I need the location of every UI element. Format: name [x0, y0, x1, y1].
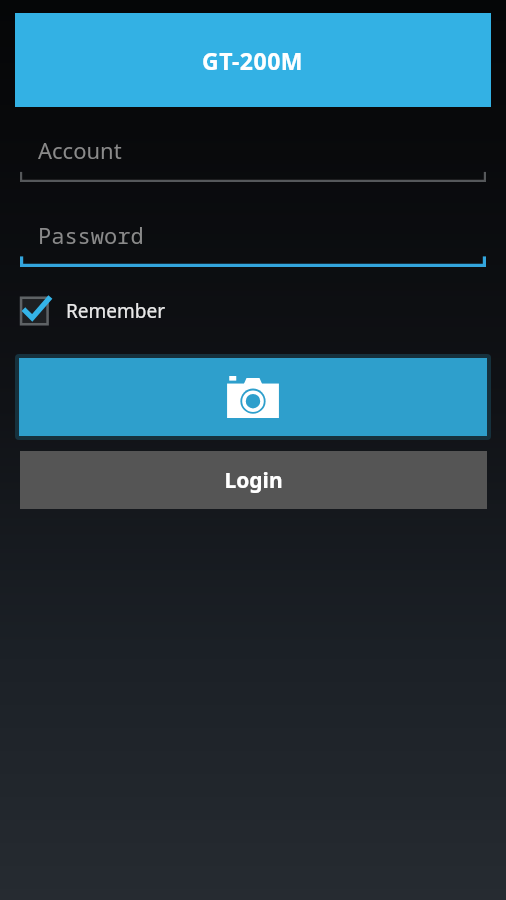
button[interactable]: Remember: [18, 289, 166, 333]
button[interactable]: Take photo: [19, 358, 487, 436]
button[interactable]: Login: [20, 451, 487, 509]
staticText: Account: [38, 135, 122, 165]
staticText: Remember: [66, 298, 166, 324]
staticText: GT-200M: [202, 45, 304, 76]
button[interactable]: Password: [20, 219, 486, 267]
button[interactable]: Account: [20, 134, 486, 182]
staticText: Password: [38, 220, 144, 250]
button[interactable]: GT-200M: [15, 13, 491, 107]
staticText: Login: [224, 466, 283, 495]
